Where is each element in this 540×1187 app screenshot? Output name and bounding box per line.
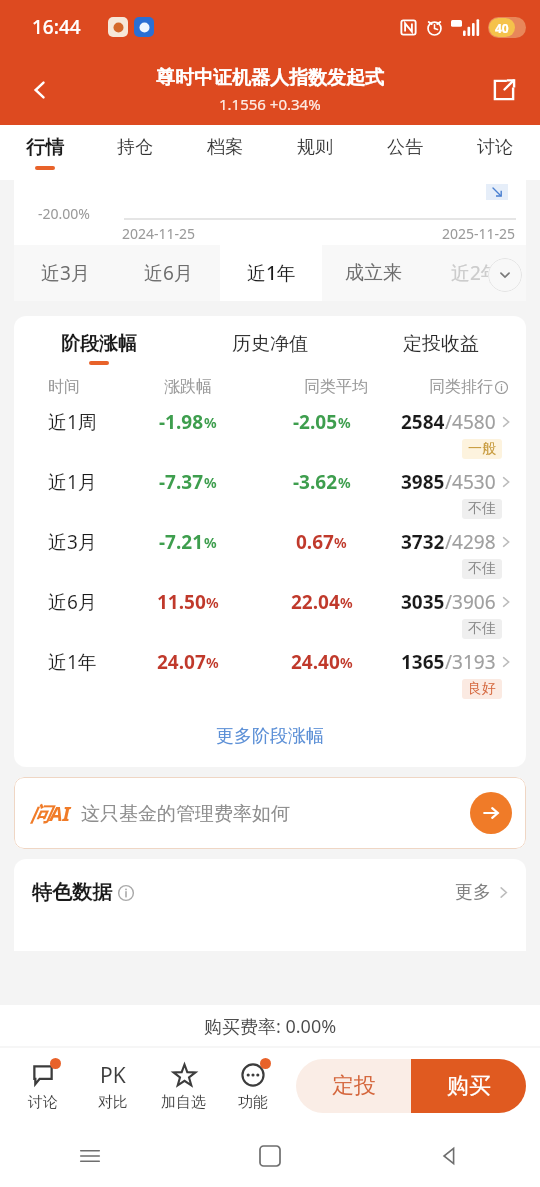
staticText: 功能	[238, 1093, 268, 1112]
staticText: 同类平均	[304, 377, 368, 397]
staticText: 成立来	[345, 261, 402, 285]
staticText: /4580	[445, 409, 496, 435]
staticText: 更多	[455, 881, 491, 904]
staticText: %	[338, 473, 351, 492]
staticText: 近6月	[144, 260, 193, 286]
button[interactable]: 购买	[411, 1059, 526, 1113]
button[interactable]: 规则	[270, 125, 360, 180]
button[interactable]: 近3月	[14, 523, 526, 583]
staticText: %	[338, 413, 351, 432]
button[interactable]: 近6月	[14, 583, 526, 643]
staticText: /3906	[445, 589, 496, 615]
staticText: 对比	[98, 1093, 128, 1112]
button[interactable]: Expand chart	[486, 184, 508, 200]
staticText: 近1月	[48, 469, 97, 495]
staticText: 近3月	[48, 529, 97, 555]
staticText: 3035	[401, 589, 445, 615]
staticText: 涨跌幅	[164, 377, 212, 397]
staticText: 不佳	[468, 560, 496, 578]
staticText: /3193	[445, 649, 496, 675]
button[interactable]: 讨论	[8, 1047, 78, 1125]
button[interactable]: 近1年	[14, 643, 526, 703]
staticText: 24.40	[291, 649, 340, 675]
staticText: 22.04	[291, 589, 340, 615]
button[interactable]: 近1年	[220, 245, 322, 301]
staticText: 定投	[332, 1072, 376, 1100]
staticText: 16:44	[32, 14, 81, 40]
staticText: 近6月	[48, 589, 97, 615]
button[interactable]: 行情	[0, 125, 90, 180]
staticText: %	[206, 593, 219, 612]
button[interactable]: 更多	[455, 881, 510, 904]
staticText: %	[340, 653, 353, 672]
button[interactable]: 近6月	[117, 245, 220, 301]
button[interactable]: 近1月	[14, 463, 526, 523]
staticText: -7.37	[159, 469, 204, 495]
staticText: /4298	[445, 529, 496, 555]
button[interactable]: Send	[470, 792, 512, 834]
button[interactable]: Share	[482, 68, 526, 112]
staticText: %	[204, 473, 217, 492]
button[interactable]: 问AI	[14, 777, 526, 849]
button[interactable]: 更多阶段涨幅	[14, 711, 526, 761]
button[interactable]: Back	[18, 68, 62, 112]
button[interactable]: 档案	[180, 125, 270, 180]
staticText: 问AI	[30, 800, 71, 827]
staticText: 3985	[401, 469, 445, 495]
staticText: 行情	[26, 136, 64, 160]
staticText: -3.62	[293, 469, 338, 495]
staticText: 这只基金的管理费率如何	[81, 802, 290, 826]
staticText: 加自选	[161, 1093, 206, 1112]
staticText: 阶段涨幅	[61, 332, 137, 356]
button[interactable]: 加自选	[148, 1047, 218, 1125]
staticText: 同类排行	[429, 377, 493, 397]
button[interactable]: 成立来	[322, 245, 424, 301]
button[interactable]: 功能	[218, 1047, 288, 1125]
staticText: 近2年	[451, 260, 500, 286]
staticText: 定投收益	[403, 332, 479, 356]
staticText: 1.1556 +0.34%	[219, 94, 321, 114]
staticText: %	[340, 593, 353, 612]
button[interactable]: 近1周	[14, 403, 526, 463]
button[interactable]: 公告	[360, 125, 450, 180]
staticText: 40	[495, 20, 509, 36]
staticText: -2.05	[293, 409, 338, 435]
staticText: 24.07	[157, 649, 206, 675]
staticText: 尊时中证机器人指数发起式	[156, 66, 384, 90]
staticText: 购买费率: 0.00%	[204, 1014, 337, 1039]
staticText: 近1年	[247, 260, 296, 286]
staticText: 良好	[468, 680, 496, 698]
staticText: %	[204, 533, 217, 552]
staticText: 更多阶段涨幅	[216, 725, 324, 748]
staticText: 3732	[401, 529, 445, 555]
button[interactable]: More ranges	[488, 258, 522, 292]
staticText: /4530	[445, 469, 496, 495]
button[interactable]: 阶段涨幅	[14, 332, 184, 365]
button[interactable]: 定投收益	[355, 332, 526, 365]
staticText: 持仓	[117, 136, 153, 159]
staticText: 公告	[387, 136, 423, 159]
staticText: 11.50	[157, 589, 206, 615]
staticText: -7.21	[159, 529, 204, 555]
staticText: 近3月	[41, 260, 90, 286]
staticText: -1.98	[159, 409, 204, 435]
staticText: %	[334, 533, 347, 552]
button[interactable]: PK	[78, 1047, 148, 1125]
staticText: 讨论	[477, 136, 513, 159]
button[interactable]: 历史净值	[184, 332, 355, 365]
staticText: 历史净值	[232, 332, 308, 356]
button[interactable]: 讨论	[450, 125, 540, 180]
button[interactable]: 近3月	[14, 245, 117, 301]
staticText: 2024-11-25	[122, 224, 196, 243]
staticText: 0.67	[296, 529, 334, 555]
staticText: PK	[100, 1061, 126, 1090]
staticText: 讨论	[28, 1093, 58, 1112]
staticText: 2584	[401, 409, 445, 435]
staticText: 1365	[401, 649, 445, 675]
staticText: %	[204, 413, 217, 432]
staticText: 时间	[48, 377, 80, 397]
button[interactable]: 定投	[296, 1059, 411, 1113]
button[interactable]: 持仓	[90, 125, 180, 180]
staticText: 2025-11-25	[442, 224, 516, 243]
staticText: 不佳	[468, 620, 496, 638]
